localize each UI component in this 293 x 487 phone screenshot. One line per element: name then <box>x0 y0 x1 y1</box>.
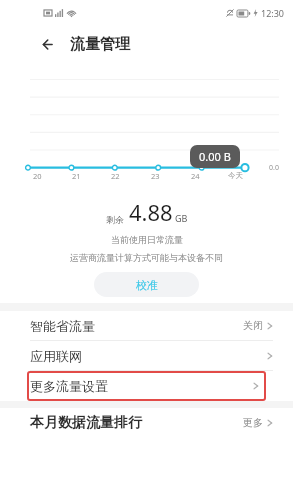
button[interactable]: 返回 <box>34 30 62 58</box>
staticText: 当前使用日常流量 <box>111 234 183 245</box>
staticText: 应用联网 <box>30 348 82 364</box>
staticText: 21 <box>72 171 81 181</box>
staticText: 12:30 <box>261 7 285 19</box>
staticText: GB <box>175 212 188 224</box>
staticText: 运营商流量计算方式可能与本设备不同 <box>70 252 223 263</box>
staticText: 本月数据流量排行 <box>30 414 142 432</box>
staticText: 20 <box>33 171 42 181</box>
staticText: 校准 <box>136 278 158 292</box>
staticText: 24 <box>191 171 200 181</box>
staticText: 更多 <box>243 416 263 429</box>
staticText: 智能省流量 <box>30 318 95 334</box>
staticText: 更多流量设置 <box>30 378 108 394</box>
button[interactable]: 智能省流量 <box>0 311 293 340</box>
staticText: 今天 <box>228 171 243 180</box>
staticText: 22 <box>111 171 120 181</box>
button[interactable]: 更多流量设置 <box>27 371 266 401</box>
button[interactable]: 本月数据流量排行 <box>0 408 293 437</box>
button[interactable]: 校准 <box>94 272 199 297</box>
staticText: 0.0 <box>269 163 279 173</box>
staticText: 0.00 B <box>199 149 231 164</box>
button[interactable]: 应用联网 <box>0 341 293 370</box>
staticText: 剩余 <box>106 214 124 225</box>
staticText: 23 <box>151 171 160 181</box>
staticText: 4.88 <box>129 197 173 227</box>
staticText: 关闭 <box>243 319 263 332</box>
staticText: 流量管理 <box>70 35 130 54</box>
